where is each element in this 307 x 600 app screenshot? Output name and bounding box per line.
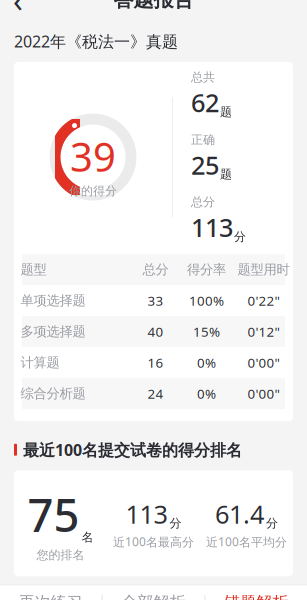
staticText: 全部解析 (121, 592, 185, 600)
staticText: 0'00" (247, 385, 279, 402)
staticText: 名 (81, 530, 93, 544)
staticText: 题型 (20, 261, 46, 278)
staticText: 0% (197, 385, 216, 402)
staticText: 100% (189, 292, 224, 309)
staticText: 近100名最高分 (113, 534, 194, 550)
staticText: 75 (27, 484, 79, 544)
staticText: 39 (70, 130, 116, 183)
staticText: 答题报告 (113, 0, 193, 12)
staticText: 2022年《税法一》真题 (14, 31, 178, 52)
button[interactable]: Back (0, 0, 36, 17)
staticText: 分 (169, 516, 181, 531)
staticText: 总共 (191, 70, 215, 85)
staticText: 题 (220, 167, 232, 182)
staticText: 得分率 (187, 261, 226, 278)
staticText: 错题解析 (224, 592, 288, 600)
staticText: 0'22" (247, 292, 279, 309)
staticText: 总分 (142, 261, 168, 278)
staticText: 综合分析题 (20, 385, 85, 402)
staticText: 多项选择题 (20, 323, 85, 340)
staticText: 您的排名 (36, 547, 84, 562)
staticText: 40 (147, 323, 163, 340)
staticText: 你的得分 (69, 184, 117, 198)
staticText: 113 (191, 210, 233, 244)
staticText: 分 (234, 229, 246, 244)
staticText: ‹ (13, 0, 23, 21)
staticText: 单项选择题 (20, 292, 85, 309)
staticText: 33 (147, 292, 163, 309)
staticText: 0% (197, 354, 216, 371)
staticText: 近100名平均分 (206, 534, 287, 550)
staticText: 15% (193, 323, 220, 340)
staticText: 61.4 (215, 497, 264, 531)
button[interactable]: 再次练习 (0, 586, 102, 600)
staticText: 计算题 (20, 354, 59, 371)
staticText: 最近100名提交试卷的得分排名 (23, 439, 242, 460)
staticText: 再次练习 (19, 592, 83, 600)
staticText: 16 (147, 354, 163, 371)
button[interactable]: 全部解析 (103, 586, 204, 600)
staticText: 62 (191, 86, 219, 119)
staticText: 113 (125, 497, 167, 531)
staticText: 题型用时 (237, 261, 289, 278)
button[interactable]: 错题解析 (205, 586, 307, 600)
staticText: 分 (266, 516, 278, 531)
staticText: 25 (191, 148, 219, 182)
staticText: 正确 (191, 132, 215, 147)
staticText: 0'12" (247, 323, 279, 340)
staticText: 24 (147, 385, 163, 402)
staticText: 题 (220, 105, 232, 119)
staticText: 总分 (191, 195, 215, 209)
staticText: 0'00" (247, 354, 279, 371)
